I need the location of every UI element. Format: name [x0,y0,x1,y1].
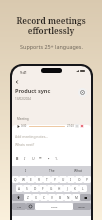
staticText: Add meeting notes... [15,134,49,139]
button[interactable]: Z [24,194,32,201]
staticText: 0:00 [21,124,27,128]
staticText: Whats next? [15,142,35,147]
button[interactable]: What [65,166,91,175]
button[interactable]: More [75,124,79,128]
staticText: A [18,187,21,191]
button[interactable]: return [73,203,91,210]
button[interactable]: E [27,176,35,183]
button[interactable]: S [23,185,31,192]
staticText: Q [14,178,17,182]
staticText: F [42,187,44,191]
button[interactable]: Emoji [26,203,35,210]
staticText: J [67,187,68,191]
staticText: 1. [55,156,59,161]
button[interactable]: F [39,185,47,192]
staticText: I [24,156,26,161]
staticText: 27:03 [67,124,74,128]
staticText: K [74,187,76,191]
button[interactable]: H [55,185,63,192]
staticText: N [67,196,70,200]
staticText: space [51,205,58,208]
button[interactable]: X [32,194,40,201]
button[interactable]: Record [80,124,84,128]
staticText: U [32,156,35,161]
staticText: P [86,178,88,182]
button[interactable]: • [45,154,53,162]
button[interactable]: space [35,203,73,210]
staticText: ≡ [39,156,43,160]
button[interactable]: 1. [53,154,61,162]
button[interactable]: M [72,194,80,201]
button[interactable]: V [48,194,56,201]
button[interactable]: N [64,194,72,201]
button[interactable]: G [47,185,55,192]
button[interactable]: I [67,176,75,183]
button[interactable]: K [71,185,79,192]
button[interactable]: Backspace [80,194,91,201]
staticText: R [38,178,40,182]
button[interactable]: Back [13,78,20,85]
button[interactable]: Options [78,88,87,97]
staticText: O [78,178,81,182]
staticText: S [26,187,28,191]
button[interactable]: ≡ [37,154,45,162]
button[interactable]: 123 [12,203,26,210]
staticText: D [34,187,37,191]
staticText: E [30,178,32,182]
button[interactable]: Y [51,176,59,183]
staticText: C [43,196,46,200]
staticText: 9:41 [20,70,27,75]
button[interactable]: L [79,185,87,192]
staticText: • [48,156,50,161]
button[interactable]: U [59,176,67,183]
staticText: Y [54,178,56,182]
button[interactable]: Shift [12,194,24,201]
staticText: B [16,156,19,161]
button[interactable]: The [39,166,65,175]
staticText: Supports 25+ languages. [20,43,83,50]
button[interactable]: T [43,176,51,183]
button[interactable]: B [13,154,21,162]
button[interactable]: U [29,154,37,162]
staticText: M [75,196,78,200]
staticText: I [25,169,27,173]
staticText: return [78,205,86,208]
button[interactable]: I [21,154,29,162]
button[interactable]: Meeting [14,114,88,132]
button[interactable]: I [12,166,39,175]
button[interactable]: C [40,194,48,201]
staticText: T [46,178,48,182]
button[interactable]: P [83,176,91,183]
staticText: U [62,178,65,182]
staticText: B [59,196,62,200]
staticText: L [82,187,84,191]
staticText: X [35,196,37,200]
staticText: V [51,196,53,200]
button[interactable]: J [63,185,71,192]
staticText: I [70,178,72,182]
button[interactable]: B [56,194,64,201]
staticText: 13/02/2024 [15,97,31,101]
staticText: Z [27,196,29,200]
staticText: Meeting [17,117,29,121]
button[interactable]: Q [12,176,19,183]
button[interactable]: W [19,176,27,183]
button[interactable]: R [35,176,43,183]
button[interactable]: A [16,185,23,192]
staticText: The [49,169,55,173]
staticText: What [74,169,82,173]
button[interactable]: O [75,176,83,183]
staticText: 123 [17,205,22,208]
staticText: H [58,187,61,191]
staticText: Product sync [15,87,51,94]
staticText: W [22,178,25,182]
staticText: Record meetings effortlessly [16,15,86,36]
staticText: G [50,187,53,191]
button[interactable]: D [31,185,39,192]
